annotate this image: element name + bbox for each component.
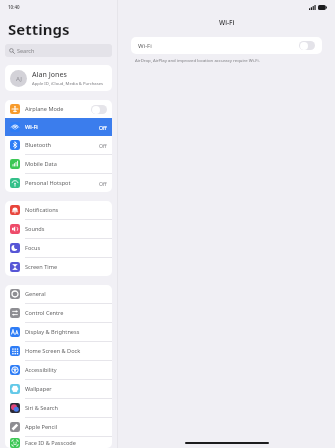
staticText: Off: [99, 124, 107, 131]
staticText: Notifications: [25, 206, 107, 214]
staticText: AirDrop, AirPlay and improved location a…: [135, 57, 260, 63]
staticText: Siri & Search: [25, 404, 107, 412]
button[interactable]: Airplane Mode: [5, 100, 112, 118]
staticText: Airplane Mode: [25, 105, 91, 113]
button[interactable]: Wi-Fi: [5, 118, 112, 136]
button[interactable]: Airplane Mode toggle: [91, 105, 107, 114]
staticText: Off: [99, 142, 107, 149]
staticText: Wi-Fi: [138, 42, 299, 50]
staticText: Control Centre: [25, 309, 107, 317]
button[interactable]: Personal Hotspot: [5, 174, 112, 192]
staticText: General: [25, 290, 107, 298]
staticText: AJ: [16, 75, 22, 83]
staticText: Bluetooth: [25, 141, 99, 149]
staticText: Alan Jones: [32, 70, 67, 80]
staticText: Display & Brightness: [25, 328, 107, 336]
button[interactable]: Wi-Fi toggle: [299, 41, 315, 50]
button[interactable]: Home Screen & Dock: [5, 342, 112, 360]
button[interactable]: Wi-Fi: [131, 37, 322, 54]
staticText: Off: [99, 180, 107, 187]
staticText: Face ID & Passcode: [25, 439, 107, 447]
button[interactable]: AJ: [5, 65, 112, 91]
button[interactable]: Accessibility: [5, 361, 112, 379]
staticText: Home Screen & Dock: [25, 347, 107, 355]
button[interactable]: Siri & Search: [5, 399, 112, 417]
staticText: Settings: [8, 19, 70, 39]
button[interactable]: General: [5, 285, 112, 303]
button[interactable]: Apple Pencil: [5, 418, 112, 436]
button[interactable]: Sounds: [5, 220, 112, 238]
button[interactable]: Display & Brightness: [5, 323, 112, 341]
staticText: 10:40: [8, 4, 20, 10]
button[interactable]: Wallpaper: [5, 380, 112, 398]
staticText: Focus: [25, 244, 107, 252]
staticText: Screen Time: [25, 263, 107, 271]
staticText: Wi-Fi: [25, 123, 99, 131]
staticText: Apple Pencil: [25, 423, 107, 431]
staticText: Apple ID, iCloud, Media & Purchases: [32, 81, 104, 87]
button[interactable]: Bluetooth: [5, 136, 112, 154]
staticText: Mobile Data: [25, 160, 107, 168]
button[interactable]: Search: [5, 44, 112, 57]
button[interactable]: Control Centre: [5, 304, 112, 322]
button[interactable]: Screen Time: [5, 258, 112, 276]
button[interactable]: Face ID & Passcode: [5, 437, 112, 448]
staticText: Wi-Fi: [219, 18, 235, 27]
button[interactable]: Mobile Data: [5, 155, 112, 173]
staticText: Wallpaper: [25, 385, 107, 393]
button[interactable]: Notifications: [5, 201, 112, 219]
staticText: Accessibility: [25, 366, 107, 374]
staticText: Sounds: [25, 225, 107, 233]
button[interactable]: Focus: [5, 239, 112, 257]
staticText: Search: [17, 47, 35, 54]
staticText: Personal Hotspot: [25, 179, 99, 187]
